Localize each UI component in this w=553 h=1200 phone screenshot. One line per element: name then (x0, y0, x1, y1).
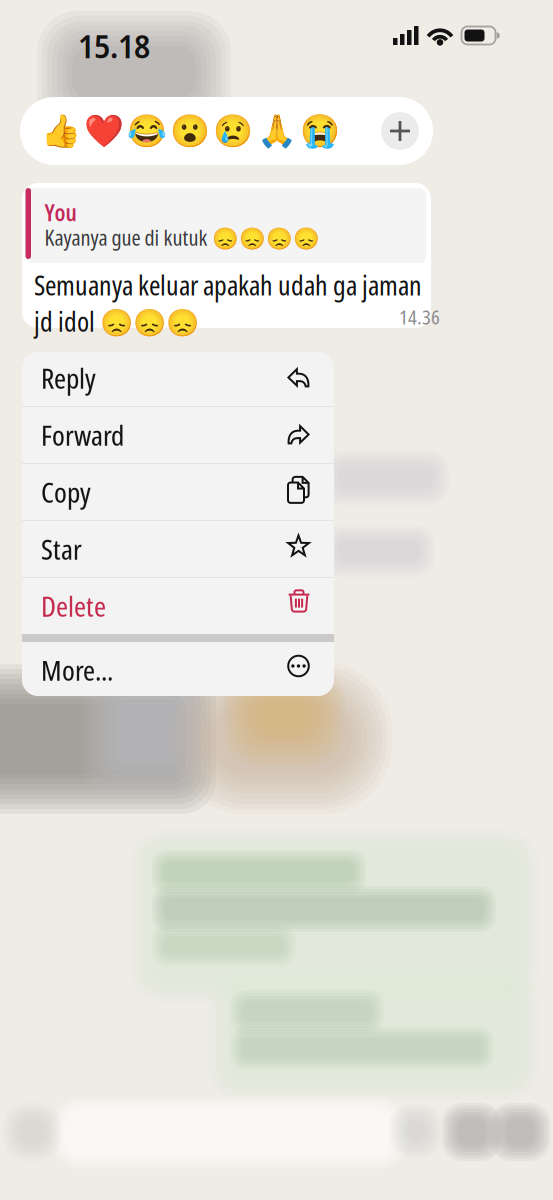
button[interactable]: React (39, 97, 82, 165)
button[interactable]: React (255, 97, 298, 165)
button[interactable]: Reply (22, 350, 334, 406)
staticText: 14.36 (399, 303, 440, 330)
button[interactable]: Copy (22, 464, 334, 520)
button[interactable]: Star (22, 521, 334, 577)
button[interactable]: Forward (22, 407, 334, 463)
button[interactable]: React (212, 97, 255, 165)
staticText: Copy (41, 473, 91, 511)
staticText: Semuanya keluar apakah udah ga jaman jd … (34, 267, 422, 340)
button[interactable]: More... (22, 642, 334, 698)
staticText: Star (41, 530, 82, 568)
button[interactable]: React (298, 97, 341, 165)
staticText: 😢 (213, 112, 253, 150)
staticText: You (44, 197, 76, 228)
staticText: More... (41, 651, 113, 689)
staticText: 15.18 (78, 24, 150, 68)
button[interactable]: More reactions (376, 107, 424, 155)
staticText: 👍 (41, 112, 81, 150)
staticText: 😮 (170, 112, 210, 150)
staticText: 🙏 (257, 112, 297, 150)
staticText: 😂 (127, 112, 167, 150)
button[interactable]: React (82, 97, 125, 165)
staticText: ❤️ (84, 112, 124, 150)
staticText: 😭 (300, 112, 340, 150)
staticText: Forward (41, 416, 124, 454)
button[interactable]: React (169, 97, 212, 165)
staticText: Kayanya gue di kutuk 😞😞😞😞 (44, 223, 319, 252)
button[interactable]: React (125, 97, 169, 165)
staticText: Delete (41, 587, 106, 625)
staticText: Reply (41, 359, 96, 397)
button[interactable]: Delete (22, 578, 334, 634)
